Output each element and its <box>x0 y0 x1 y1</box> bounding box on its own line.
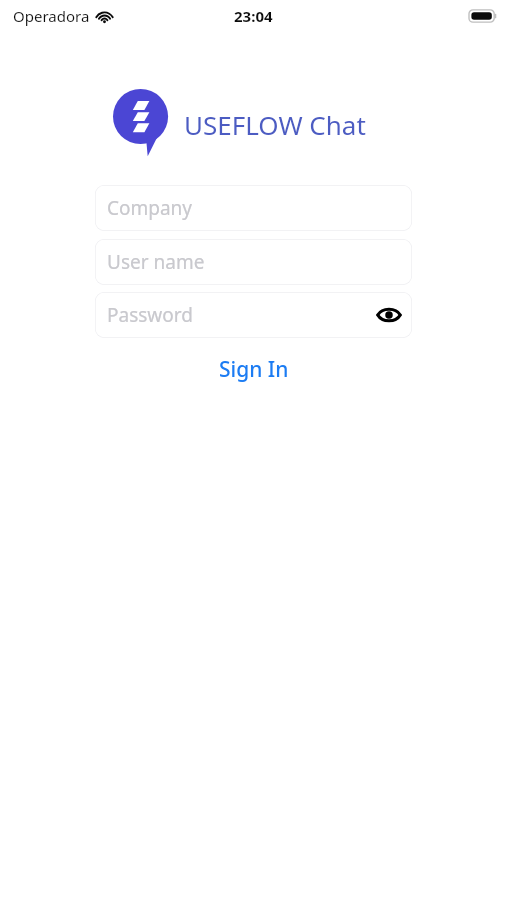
staticText: Operadora <box>13 6 90 26</box>
button[interactable]: Sign In <box>203 350 305 389</box>
button[interactable]: Password <box>95 292 412 338</box>
button[interactable]: User name <box>95 239 412 285</box>
staticText: USEFLOW Chat <box>184 107 366 142</box>
staticText: Password <box>107 302 193 328</box>
staticText: Company <box>107 195 193 221</box>
staticText: Sign In <box>219 355 289 384</box>
button[interactable]: Show password <box>372 298 406 332</box>
staticText: User name <box>107 249 205 275</box>
button[interactable]: Company <box>95 185 412 231</box>
staticText: 23:04 <box>234 6 273 26</box>
